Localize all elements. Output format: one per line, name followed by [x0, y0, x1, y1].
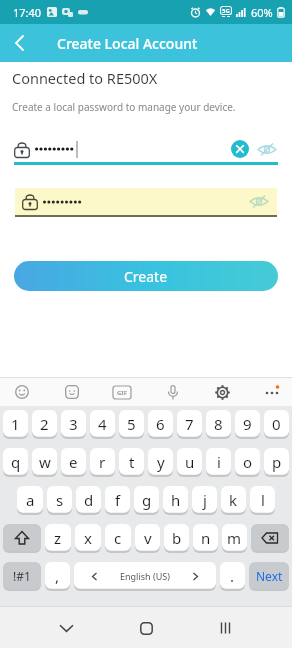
staticText: c — [114, 528, 122, 548]
button[interactable]: . — [220, 562, 245, 590]
button[interactable]: k — [221, 486, 246, 514]
button[interactable]: g — [134, 486, 159, 514]
staticText: t — [129, 452, 135, 472]
button[interactable] — [11, 381, 33, 403]
button[interactable] — [0, 24, 39, 62]
staticText: l — [261, 490, 265, 510]
button[interactable]: f — [105, 486, 130, 514]
button[interactable]: English (US) — [74, 562, 216, 590]
staticText: Connected to RE500X — [12, 68, 158, 88]
staticText: Create Local Account — [57, 34, 198, 53]
button[interactable]: 0 — [264, 410, 289, 438]
staticText: 5G — [222, 7, 230, 15]
staticText: a — [26, 490, 35, 510]
button[interactable]: z — [45, 524, 71, 552]
staticText: s — [56, 490, 64, 510]
staticText: , — [55, 566, 60, 586]
button[interactable] — [256, 139, 278, 159]
button[interactable]: 6 — [148, 410, 173, 438]
staticText: Create a local password to manage your d… — [12, 100, 236, 114]
staticText: . — [230, 566, 235, 586]
button[interactable] — [132, 614, 160, 642]
staticText: i — [217, 452, 221, 472]
button[interactable]: i — [206, 448, 231, 476]
button[interactable]: e — [61, 448, 86, 476]
staticText: 6 — [156, 414, 165, 434]
staticText: w — [39, 452, 51, 472]
staticText: z — [54, 528, 62, 548]
staticText: 0 — [272, 414, 281, 434]
button[interactable]: c — [105, 524, 131, 552]
button[interactable] — [212, 614, 240, 642]
button[interactable]: a — [17, 486, 43, 514]
button[interactable]: !#1 — [3, 562, 41, 590]
button[interactable]: 9 — [235, 410, 260, 438]
button[interactable]: p — [264, 448, 289, 476]
button[interactable]: d — [76, 486, 101, 514]
button[interactable]: q — [3, 448, 28, 476]
button[interactable]: v — [135, 524, 160, 552]
staticText: y — [157, 452, 165, 472]
staticText: n — [201, 528, 211, 548]
button[interactable] — [231, 140, 249, 158]
staticText: e — [69, 452, 78, 472]
button[interactable]: x — [75, 524, 101, 552]
button[interactable]: b — [164, 524, 189, 552]
button[interactable]: Create — [14, 261, 278, 291]
staticText: English (US) — [120, 570, 170, 582]
button[interactable]: j — [192, 486, 217, 514]
button[interactable]: , — [45, 562, 70, 590]
staticText: Create — [124, 267, 168, 286]
button[interactable]: h — [163, 486, 188, 514]
button[interactable] — [3, 524, 41, 552]
staticText: h — [171, 490, 181, 510]
staticText: g — [142, 490, 152, 510]
staticText: 7 — [185, 414, 194, 434]
button[interactable]: Next — [249, 562, 289, 590]
button[interactable]: 5 — [119, 410, 144, 438]
button[interactable]: m — [222, 524, 247, 552]
button[interactable]: r — [90, 448, 115, 476]
staticText: Next — [256, 568, 283, 584]
button[interactable]: GIF — [110, 380, 134, 404]
button[interactable]: 3 — [61, 410, 86, 438]
staticText: 3 — [69, 414, 78, 434]
button[interactable]: s — [47, 486, 72, 514]
staticText: x — [84, 528, 92, 548]
staticText: 60% — [251, 5, 273, 20]
button[interactable] — [61, 381, 83, 403]
staticText: k — [229, 490, 238, 510]
staticText: j — [203, 490, 207, 510]
staticText: 2 — [40, 414, 49, 434]
button[interactable]: 7 — [177, 410, 202, 438]
button[interactable]: l — [250, 486, 275, 514]
staticText: 8 — [214, 414, 223, 434]
button[interactable]: 8 — [206, 410, 231, 438]
button[interactable] — [52, 614, 80, 642]
staticText: 1 — [11, 414, 20, 434]
button[interactable] — [261, 381, 283, 403]
button[interactable]: w — [32, 448, 57, 476]
button[interactable]: 4 — [90, 410, 115, 438]
staticText: q — [11, 452, 21, 472]
staticText: p — [272, 452, 282, 472]
staticText: b — [172, 528, 182, 548]
button[interactable] — [211, 381, 233, 403]
button[interactable]: n — [193, 524, 218, 552]
button[interactable]: 2 — [32, 410, 57, 438]
button[interactable]: o — [235, 448, 260, 476]
button[interactable]: 1 — [3, 410, 28, 438]
staticText: v — [144, 528, 152, 548]
staticText: u — [185, 452, 195, 472]
button[interactable]: y — [148, 448, 173, 476]
staticText: f — [115, 490, 121, 510]
staticText: 5 — [127, 414, 136, 434]
button[interactable] — [162, 381, 184, 403]
staticText: d — [84, 490, 94, 510]
button[interactable] — [251, 524, 289, 552]
button[interactable]: t — [119, 448, 144, 476]
staticText: 4 — [98, 414, 107, 434]
staticText: r — [99, 452, 106, 472]
button[interactable]: u — [177, 448, 202, 476]
staticText: GIF — [117, 389, 127, 397]
